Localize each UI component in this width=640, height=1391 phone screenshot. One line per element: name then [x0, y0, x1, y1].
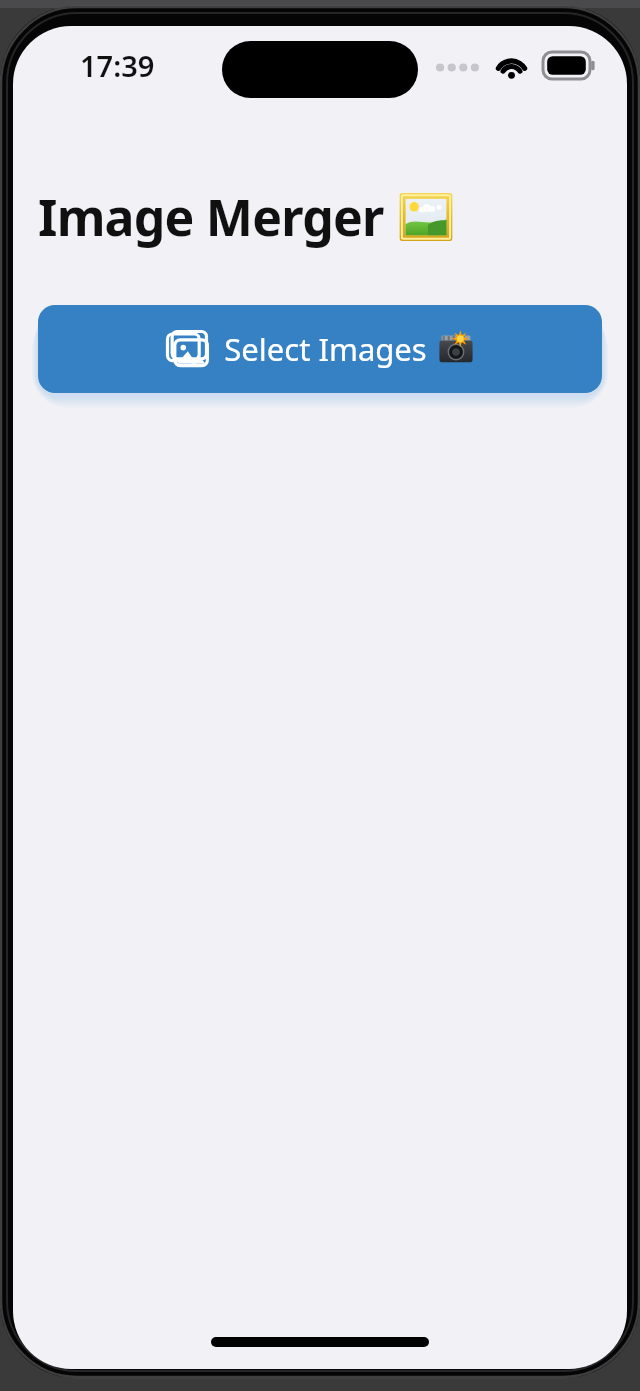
- staticText: Select Images: [224, 328, 427, 370]
- button[interactable]: Select Images: [38, 305, 602, 393]
- staticText: Image Merger: [38, 183, 384, 251]
- staticText: 17:39: [80, 46, 155, 85]
